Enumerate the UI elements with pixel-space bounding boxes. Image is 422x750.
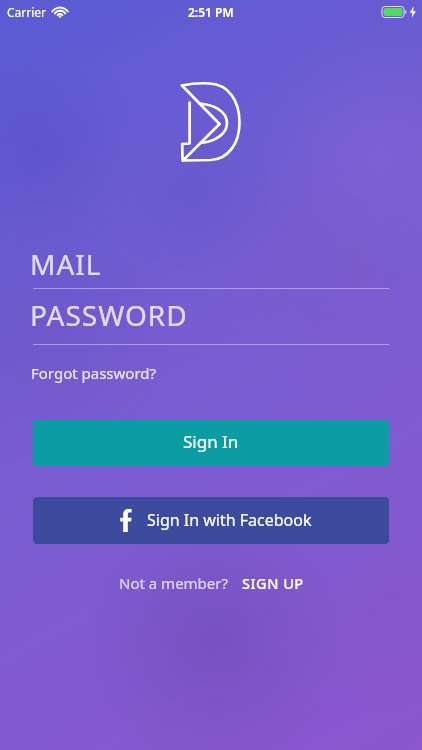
staticText: Not a member? [119, 573, 229, 593]
button[interactable] [33, 296, 389, 345]
button[interactable]: Sign In with Facebook [33, 497, 389, 544]
button[interactable] [33, 245, 389, 289]
button[interactable]: Sign In [33, 420, 389, 466]
button[interactable]: Forgot password? [31, 363, 157, 383]
staticText: 2:51 PM [188, 4, 234, 20]
staticText: Sign In [183, 430, 239, 453]
staticText: MAIL [30, 245, 102, 283]
staticText: Carrier [7, 4, 47, 20]
button[interactable]: SIGN UP [242, 573, 304, 593]
staticText: Forgot password? [31, 363, 157, 383]
staticText: Sign In with Facebook [147, 509, 312, 531]
staticText: SIGN UP [242, 573, 304, 593]
staticText: PASSWORD [30, 296, 188, 334]
